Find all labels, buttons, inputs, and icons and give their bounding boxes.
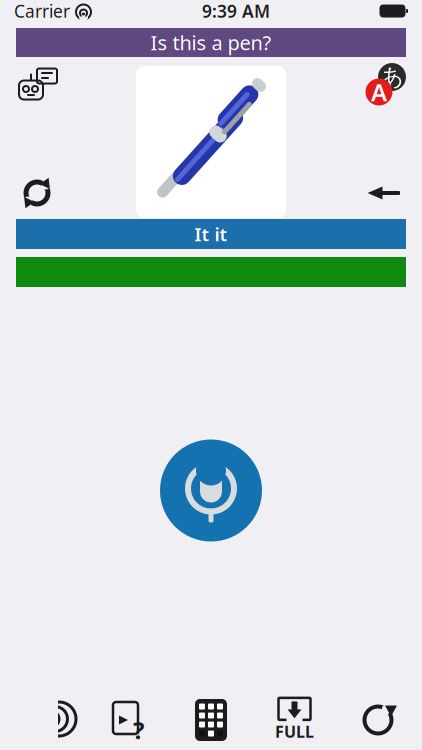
- button[interactable]: Record: [160, 439, 262, 541]
- button[interactable]: Help: [95, 694, 159, 746]
- button[interactable]: Keypad: [179, 694, 243, 746]
- staticText: 9:39 AM: [202, 0, 270, 22]
- staticText: Is this a pen?: [150, 29, 271, 56]
- button[interactable]: Back: [363, 173, 407, 213]
- button[interactable]: Full download: [262, 694, 326, 746]
- button[interactable]: Chat bot: [14, 63, 60, 105]
- staticText: Carrier: [14, 0, 70, 22]
- button[interactable]: Refresh: [346, 694, 410, 746]
- staticText: あ: [380, 63, 403, 91]
- staticText: A: [371, 76, 387, 108]
- button[interactable]: Repeat: [15, 173, 59, 213]
- staticText: FULL: [275, 721, 314, 742]
- staticText: It it: [194, 222, 227, 246]
- button[interactable]: Listen: [12, 694, 76, 746]
- button[interactable]: It it: [16, 219, 406, 249]
- staticText: ?: [133, 714, 144, 746]
- button[interactable]: Translate: [362, 63, 408, 107]
- button[interactable]: Is this a pen?: [16, 28, 406, 57]
